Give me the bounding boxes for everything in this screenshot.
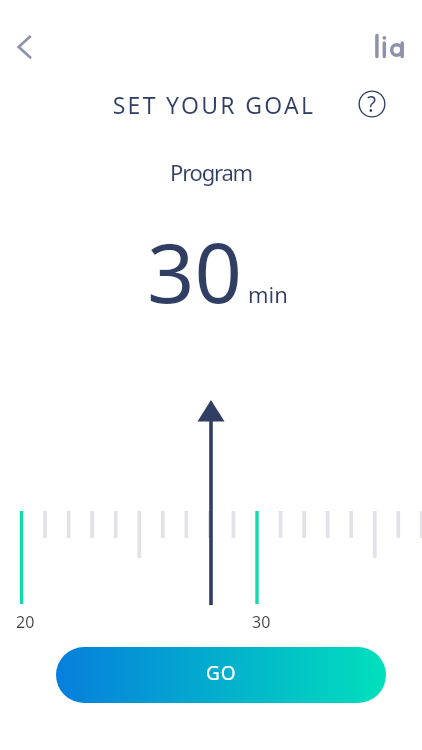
staticText: SET YOUR GOAL — [3, 89, 422, 120]
staticText: ? — [367, 90, 377, 118]
button[interactable]: Back — [2, 23, 50, 71]
button[interactable]: GO — [56, 647, 386, 703]
staticText: 30 — [252, 611, 271, 633]
button[interactable]: lia — [370, 28, 410, 62]
staticText: Program — [0, 157, 422, 187]
button[interactable]: Help — [358, 90, 386, 118]
staticText: min — [248, 279, 288, 309]
staticText: 20 — [16, 611, 35, 633]
staticText: GO — [206, 660, 237, 686]
staticText: 30 — [147, 214, 242, 327]
